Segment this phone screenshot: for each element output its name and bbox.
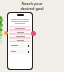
- button[interactable]: [9, 43, 31, 48]
- button[interactable]: Notification: [31, 31, 36, 36]
- button[interactable]: [9, 38, 31, 42]
- button[interactable]: [9, 34, 31, 38]
- button[interactable]: [9, 49, 31, 54]
- button[interactable]: Reward: [4, 31, 8, 35]
- button[interactable]: [9, 26, 31, 30]
- staticText: desired goal: [20, 6, 44, 11]
- button[interactable]: [9, 30, 31, 34]
- staticText: Reach your: [21, 1, 43, 6]
